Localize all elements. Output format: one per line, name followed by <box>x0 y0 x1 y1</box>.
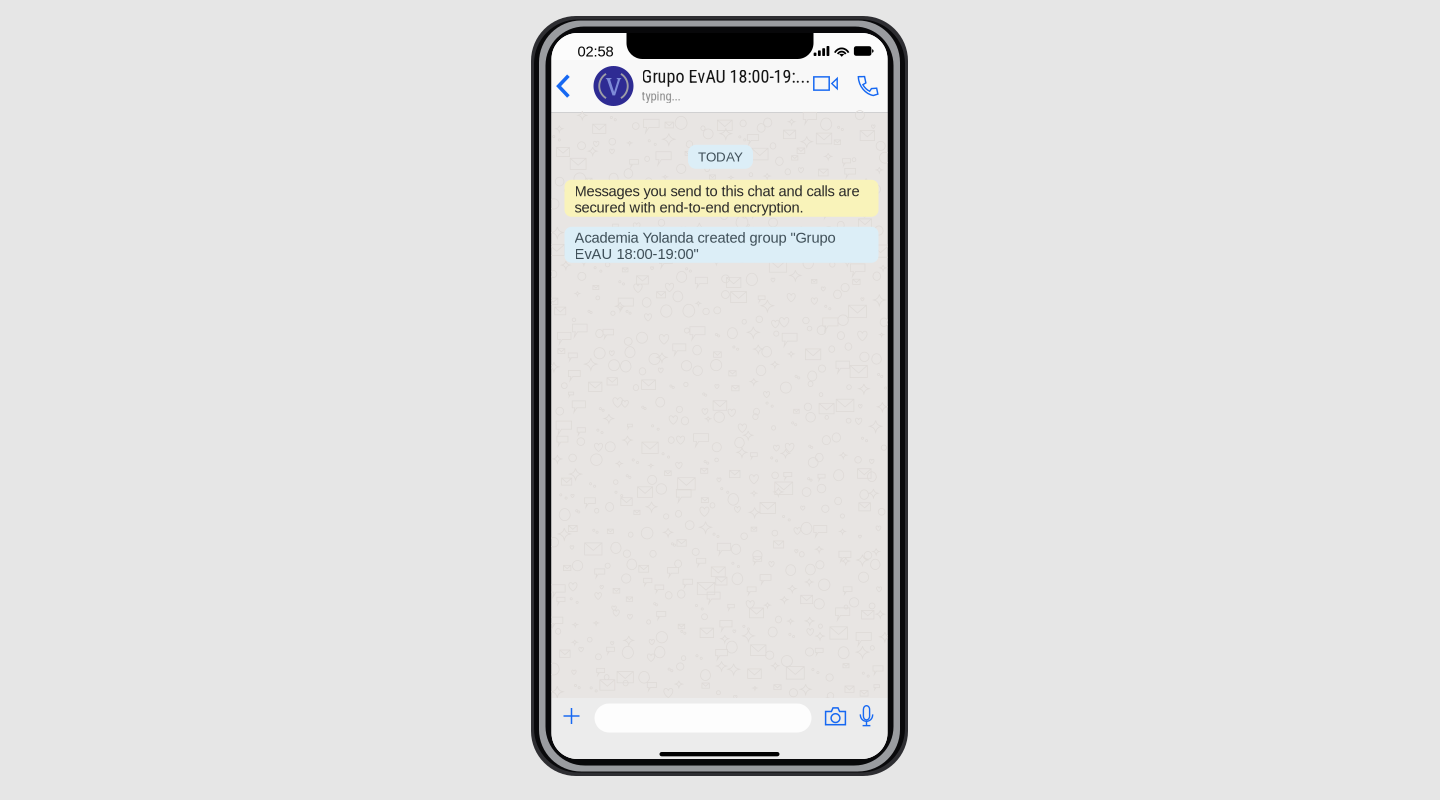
button[interactable]: Video call <box>810 57 840 109</box>
button[interactable]: TODAY <box>688 145 753 169</box>
button[interactable]: Attach <box>556 699 586 733</box>
staticText: TODAY <box>698 149 743 164</box>
staticText: Grupo EvAU 18:00-19:... <box>641 66 810 87</box>
staticText: typing... <box>641 89 680 103</box>
button[interactable]: Voice call <box>854 60 882 112</box>
button[interactable]: Back <box>549 60 577 112</box>
staticText: Academia Yolanda created group "Grupo Ev… <box>574 229 835 262</box>
button[interactable]: Camera <box>820 699 850 733</box>
staticText: Messages you send to this chat and calls… <box>574 183 859 216</box>
button[interactable]: Grupo EvAU 18:00-19:... <box>593 60 813 112</box>
button[interactable]: Voice message <box>855 698 877 732</box>
staticText: 02:58 <box>577 43 613 60</box>
